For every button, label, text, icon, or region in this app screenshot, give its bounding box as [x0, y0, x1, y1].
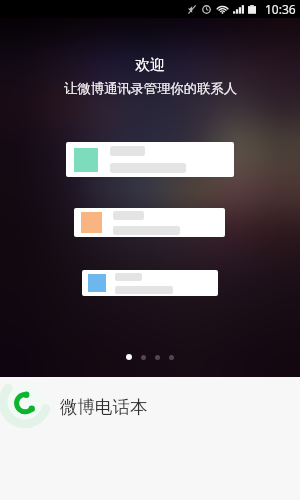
button[interactable] — [82, 270, 218, 296]
button[interactable] — [74, 208, 225, 237]
staticText: 让微博通讯录管理你的联系人 — [64, 80, 237, 97]
button[interactable] — [141, 355, 146, 360]
button[interactable]: 微博电话本 — [0, 377, 300, 437]
staticText: 10:36 — [265, 1, 296, 17]
staticText: 欢迎 — [135, 56, 165, 75]
button[interactable] — [66, 142, 234, 177]
other: 微博电话本 — [0, 376, 52, 434]
staticText: 微博电话本 — [60, 396, 148, 418]
button[interactable] — [126, 354, 132, 360]
button[interactable] — [155, 355, 160, 360]
button[interactable] — [169, 355, 174, 360]
